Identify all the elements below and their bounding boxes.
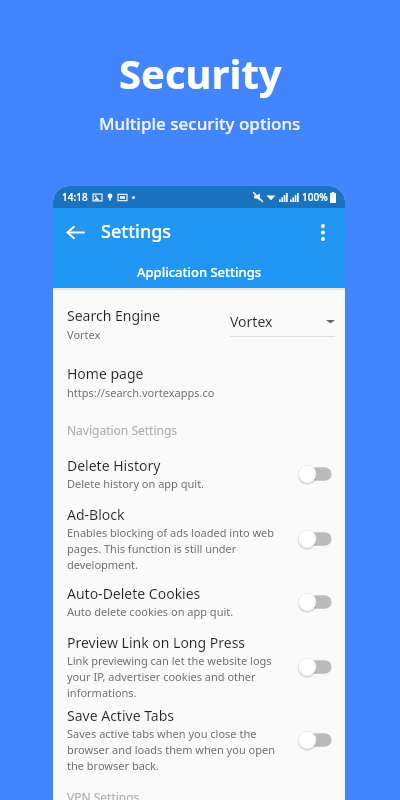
button[interactable]: Preview Link on Long Press [297,656,333,678]
staticText: Vortex [67,327,101,342]
button[interactable]: Ad-Block [53,505,345,572]
staticText: Preview Link on Long Press [67,633,246,652]
staticText: 14:18 [62,190,88,204]
staticText: VPN Settings [67,789,140,800]
staticText: Security [119,46,282,100]
staticText: Enables blocking of ads loaded into web … [67,525,287,572]
staticText: Navigation Settings [67,422,178,438]
button[interactable]: Preview Link on Long Press [53,633,345,700]
button[interactable]: Delete History [297,463,333,485]
button[interactable]: Back [53,210,97,254]
staticText: Delete history on app quit. [67,476,205,491]
button[interactable]: Home page [53,364,345,400]
staticText: Auto-Delete Cookies [67,584,201,603]
staticText: Home page [67,364,144,383]
button[interactable]: Save Active Tabs [53,706,345,773]
staticText: Save Active Tabs [67,706,175,725]
staticText: Auto delete cookies on app quit. [67,604,234,619]
staticText: https://search.vortexapps.co [67,385,215,400]
button[interactable]: Search Engine [53,302,345,346]
button[interactable]: Ad-Block [297,528,333,550]
staticText: Saves active tabs when you close the bro… [67,726,287,773]
button[interactable]: Save Active Tabs [297,729,333,751]
button[interactable]: Delete History [53,456,345,491]
staticText: Link previewing can let the website logs… [67,653,287,700]
button[interactable]: Application Settings [53,255,345,288]
button[interactable]: More options [301,210,345,254]
button[interactable]: Auto-Delete Cookies [53,584,345,619]
staticText: Application Settings [137,263,262,281]
staticText: Vortex [230,312,326,331]
staticText: 100% [302,190,328,204]
staticText: Search Engine [67,306,161,325]
button[interactable]: Auto-Delete Cookies [297,591,333,613]
staticText: Settings [101,219,172,244]
staticText: Delete History [67,456,161,475]
staticText: Multiple security options [99,112,301,135]
staticText: Ad-Block [67,505,125,524]
